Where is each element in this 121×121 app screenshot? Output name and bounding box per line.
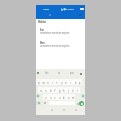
button[interactable]: l <box>75 87 80 93</box>
button[interactable]: Enter <box>79 101 84 106</box>
button[interactable]: t <box>54 79 59 85</box>
button[interactable]: u <box>63 79 68 85</box>
staticText: v <box>59 95 61 99</box>
button[interactable]: h <box>61 87 66 93</box>
button[interactable]: n <box>66 94 71 100</box>
button[interactable]: p <box>77 79 82 85</box>
staticText: n <box>67 95 70 99</box>
button[interactable]: z <box>43 94 48 100</box>
staticText: to <box>58 72 61 75</box>
staticText: s <box>45 88 47 92</box>
button[interactable]: j <box>66 87 71 93</box>
staticText: the <box>45 72 49 75</box>
staticText: Sun <box>40 28 44 32</box>
staticText: ▲ ● ▴ 100% <box>61 8 74 11</box>
staticText: a <box>40 88 42 92</box>
staticText: x <box>50 95 52 99</box>
staticText: i <box>70 80 71 84</box>
staticText: u <box>64 80 67 84</box>
staticText: e <box>47 80 49 84</box>
staticText: f <box>54 88 56 92</box>
staticText: z <box>45 95 47 99</box>
staticText: c <box>54 95 56 99</box>
staticText: somewhere·sometime·anytime·etcetera·more <box>40 44 70 48</box>
staticText: Wishlist <box>38 20 46 24</box>
button[interactable]: Symbols <box>36 101 41 105</box>
staticText: b <box>62 95 65 99</box>
button[interactable]: r <box>50 79 55 85</box>
button[interactable]: o <box>73 79 78 85</box>
button[interactable]: b <box>61 94 66 100</box>
staticText: 12:30 <box>43 8 49 11</box>
staticText: p <box>78 80 81 84</box>
staticText: y <box>61 80 63 84</box>
staticText: d <box>49 88 52 92</box>
button[interactable]: Sun <box>40 28 83 36</box>
button[interactable]: Mon <box>40 41 83 49</box>
staticText: l <box>77 88 78 92</box>
button[interactable]: e <box>45 79 50 85</box>
staticText: Mon <box>40 41 45 45</box>
staticText: k <box>72 88 74 92</box>
staticText: o <box>74 80 77 84</box>
staticText: w <box>42 80 45 84</box>
button[interactable]: v <box>57 94 62 100</box>
button[interactable]: f <box>52 87 57 93</box>
button[interactable]: k <box>70 87 75 93</box>
staticText: you <box>70 72 74 75</box>
button[interactable]: Shift <box>36 94 40 98</box>
button[interactable]: c <box>52 94 57 100</box>
button[interactable]: y <box>59 79 64 85</box>
button[interactable]: x <box>48 94 53 100</box>
button[interactable]: m <box>70 94 75 100</box>
staticText: r <box>52 80 54 84</box>
staticText: j <box>68 88 69 92</box>
staticText: t <box>56 80 58 84</box>
button[interactable]: i <box>68 79 73 85</box>
button[interactable]: g <box>57 87 62 93</box>
staticText: h <box>62 88 65 92</box>
button[interactable]: w <box>41 79 46 85</box>
button[interactable]: Backspace <box>81 94 85 98</box>
staticText: q <box>37 80 40 84</box>
button[interactable]: d <box>48 87 53 93</box>
staticText: m <box>71 95 75 99</box>
staticText: somewhere·sometime·anytime·etcetera·more <box>40 31 70 35</box>
button[interactable]: s <box>43 87 48 93</box>
button[interactable]: a <box>38 87 43 93</box>
staticText: g <box>58 88 61 92</box>
button[interactable]: q <box>36 79 41 85</box>
